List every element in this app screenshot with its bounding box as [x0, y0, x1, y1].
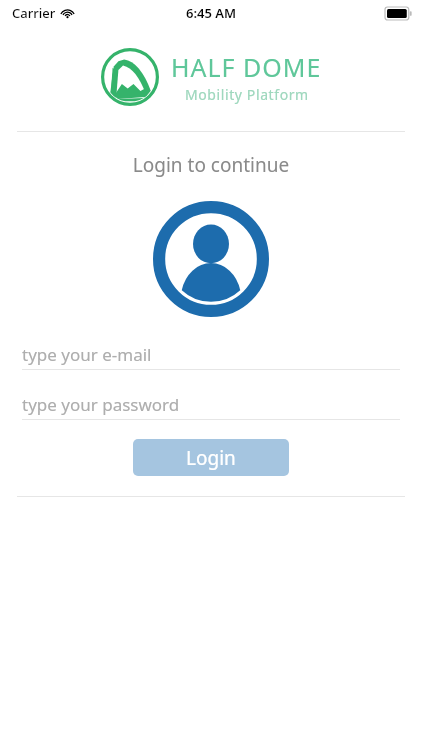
staticText: HALF DOME [171, 50, 322, 84]
staticText: Login to continue [0, 152, 422, 178]
button[interactable]: Login [133, 439, 289, 476]
staticText: Mobility Platform [185, 85, 309, 104]
staticText: type your e-mail [22, 343, 152, 366]
button[interactable]: type your password [22, 389, 400, 419]
staticText: Carrier [12, 4, 56, 22]
staticText: type your password [22, 393, 180, 416]
staticText: 6:45 AM [186, 4, 237, 22]
staticText: Login [186, 445, 236, 471]
button[interactable]: type your e-mail [22, 339, 400, 369]
